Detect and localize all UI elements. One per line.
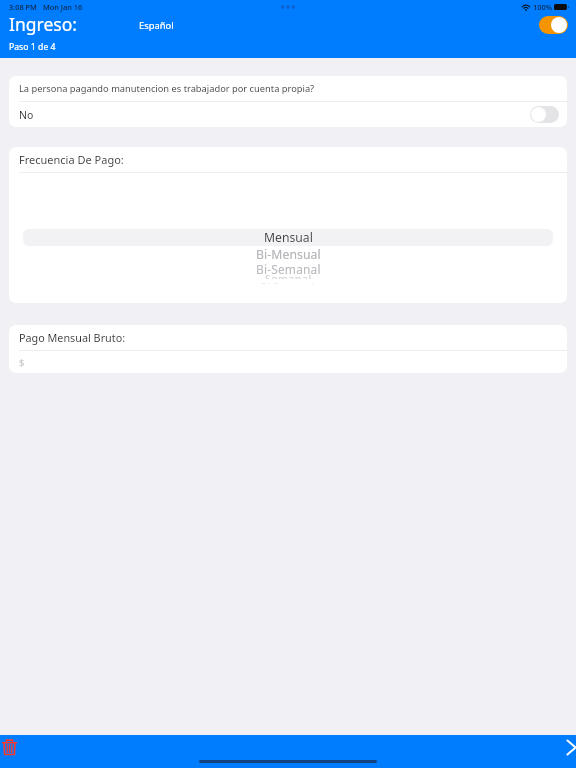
staticText: Bi-Mensual — [256, 246, 321, 260]
staticText: Mon Jan 16 — [43, 2, 83, 12]
staticText: Frecuencia De Pago: — [19, 152, 124, 167]
button[interactable]: Bi-Semanal — [9, 261, 567, 274]
button[interactable]: Delete — [0, 737, 18, 757]
button[interactable]: Mensual — [23, 229, 553, 246]
staticText: Español — [139, 19, 174, 32]
button[interactable]: Bi-Mensual — [9, 246, 567, 260]
staticText: Ingreso: — [9, 12, 77, 36]
staticText: Paso 1 de 4 — [9, 41, 56, 53]
staticText: 3:08 PM — [9, 2, 37, 12]
staticText: No — [19, 108, 34, 122]
button[interactable]: No — [9, 102, 567, 127]
button[interactable]: Español — [135, 15, 178, 35]
staticText: Semanal — [265, 275, 312, 279]
button[interactable]: Language toggle — [539, 16, 568, 34]
staticText: $ — [19, 356, 25, 369]
staticText: Bi-Semanal — [261, 282, 315, 284]
staticText: Mensual — [264, 229, 313, 246]
button[interactable]: Next step — [560, 737, 576, 757]
staticText: Pago Mensual Bruto: — [19, 330, 126, 345]
staticText: Bi-Semanal — [256, 261, 321, 274]
staticText: 100% — [533, 2, 552, 12]
staticText: La persona pagando manutencion es trabaj… — [19, 82, 315, 95]
